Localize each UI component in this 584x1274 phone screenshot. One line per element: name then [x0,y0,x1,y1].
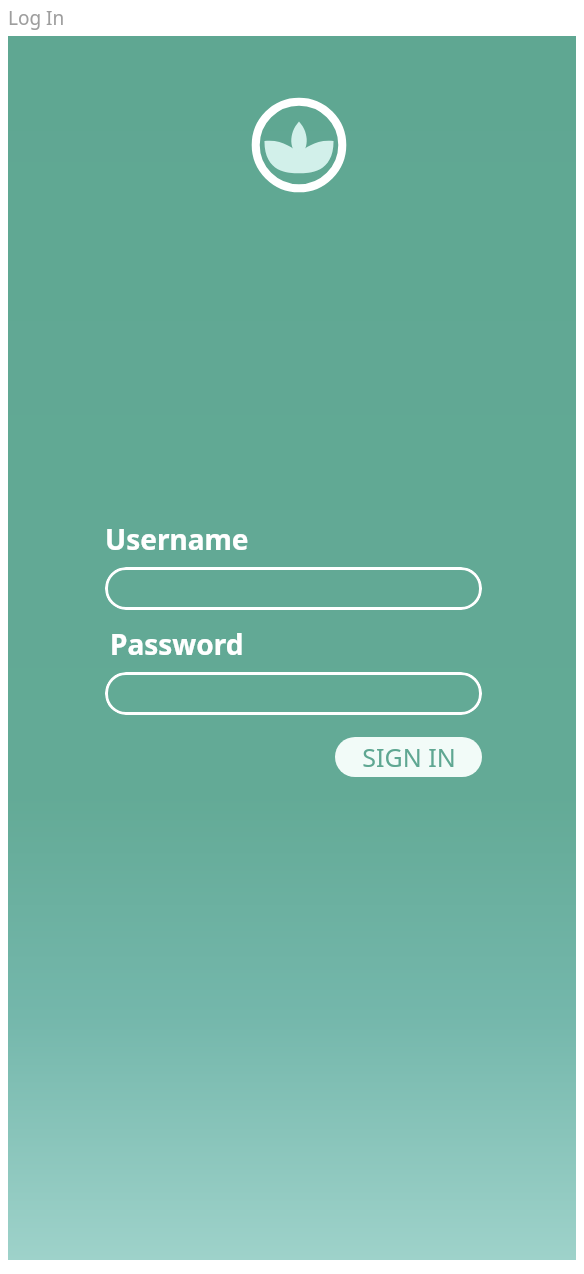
staticText: SIGN IN [362,740,456,774]
staticText: Password [110,625,244,663]
staticText: Username [105,520,249,558]
button[interactable]: Password field [105,672,482,715]
button[interactable]: SIGN IN [335,737,482,777]
staticText: Log In [8,5,65,31]
button[interactable]: Username field [105,567,482,610]
